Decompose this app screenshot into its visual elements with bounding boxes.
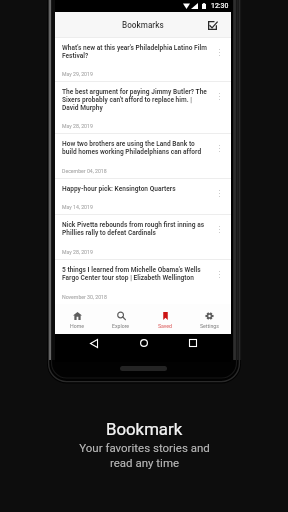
staticText: May 28, 2019 [62,123,93,129]
staticText: Saved [158,323,173,329]
staticText: May 14, 2019 [62,204,93,210]
staticText: Happy-hour pick: Kensington Quarters [62,185,176,193]
staticText: What's new at this year's Philadelphia L… [62,44,207,60]
button[interactable]: More options [210,263,228,285]
button[interactable]: Saved [143,304,187,329]
button[interactable]: What's new at this year's Philadelphia L… [55,38,231,82]
staticText: May 29, 2019 [62,71,93,77]
staticText: November 30, 2018 [62,294,107,300]
button[interactable]: More options [210,218,228,240]
staticText: Nick Pivetta rebounds from rough first i… [62,221,207,237]
button[interactable]: More options [210,85,228,107]
staticText: How two brothers are using the Land Bank… [62,140,207,156]
staticText: Explore [112,323,130,329]
staticText: 5 things I learned from Michelle Obama's… [62,266,207,282]
button[interactable]: Home [55,304,99,329]
button[interactable]: Nick Pivetta rebounds from rough first i… [55,215,231,260]
staticText: Bookmarks [122,20,164,30]
button[interactable]: The best argument for paying Jimmy Butle… [55,82,231,134]
staticText: December 04, 2018 [62,168,107,174]
button[interactable]: Edit bookmarks [204,17,220,33]
button[interactable]: Home [136,335,152,351]
staticText: Your favorites stories and read any time [79,441,210,470]
staticText: May 28, 2019 [62,249,93,255]
button[interactable]: More options [210,41,228,63]
button[interactable]: Back [86,335,102,351]
button[interactable]: How two brothers are using the Land Bank… [55,134,231,179]
staticText: Settings [200,323,219,329]
staticText: 12:30 [211,2,229,10]
button[interactable]: More options [210,182,228,204]
button[interactable]: 5 things I learned from Michelle Obama's… [55,260,231,304]
staticText: Bookmark [106,419,183,439]
button[interactable]: More options [210,137,228,159]
staticText: The best argument for paying Jimmy Butle… [62,88,207,112]
button[interactable]: Settings [187,304,231,329]
button[interactable]: Happy-hour pick: Kensington Quarters [55,179,231,215]
button[interactable]: Recent apps [185,335,201,351]
staticText: Home [70,323,84,329]
button[interactable]: Explore [99,304,143,329]
